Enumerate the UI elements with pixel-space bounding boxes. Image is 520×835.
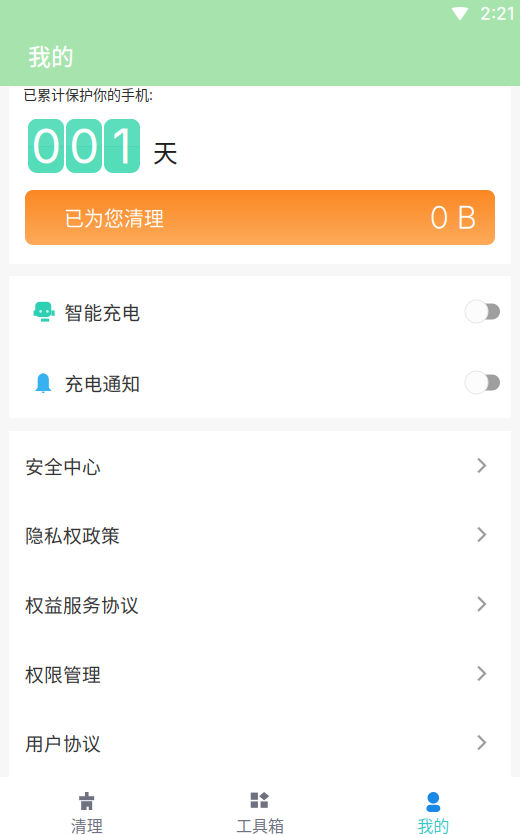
button[interactable]: 清理 — [0, 777, 173, 835]
staticText: 充电通知 — [64, 369, 140, 396]
button[interactable]: 安全中心 — [9, 431, 511, 500]
staticText: 我的 — [417, 813, 449, 835]
staticText: 清理 — [71, 813, 103, 835]
button[interactable]: 权益服务协议 — [9, 569, 511, 639]
staticText: 1 — [112, 117, 132, 175]
staticText: 2:21 — [480, 3, 514, 24]
button[interactable]: 隐私权政策 — [9, 500, 511, 569]
button[interactable]: 权限管理 — [9, 639, 511, 708]
button[interactable]: 用户协议 — [9, 708, 511, 777]
staticText: 0 — [31, 117, 61, 175]
staticText: 0 B — [430, 199, 477, 236]
staticText: 权限管理 — [25, 660, 101, 687]
staticText: 已累计保护你的手机: — [23, 84, 153, 104]
button[interactable]: 已为您清理 — [25, 190, 495, 245]
staticText: 已为您清理 — [64, 203, 164, 232]
staticText: 天 — [153, 133, 178, 169]
staticText: 智能充电 — [64, 298, 140, 325]
staticText: 安全中心 — [25, 452, 101, 479]
staticText: 我的 — [28, 39, 74, 72]
staticText: 0 — [69, 117, 99, 175]
button[interactable]: 工具箱 — [173, 777, 347, 835]
staticText: 权益服务协议 — [25, 590, 139, 617]
staticText: 用户协议 — [25, 729, 101, 756]
staticText: 隐私权政策 — [25, 521, 120, 548]
button[interactable]: 我的 — [347, 777, 520, 835]
staticText: 工具箱 — [236, 813, 284, 835]
button[interactable]: 智能充电 — [9, 276, 511, 347]
button[interactable]: 充电通知 — [9, 347, 511, 418]
